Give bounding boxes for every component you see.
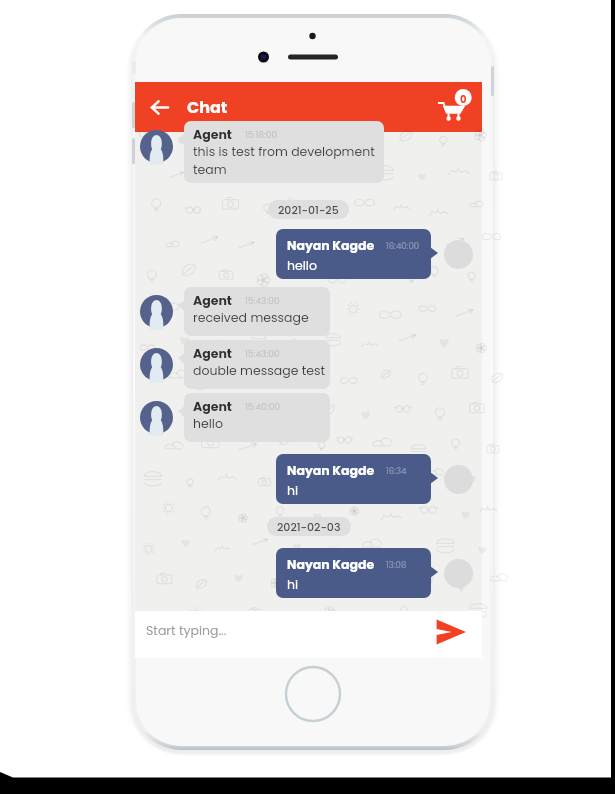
button[interactable]: Back <box>144 92 174 122</box>
staticText: 15:43:00 <box>245 348 280 361</box>
staticText: hello <box>193 415 223 432</box>
staticText: 2021-02-03 <box>277 519 341 534</box>
staticText: 13:08 <box>386 559 407 571</box>
staticText: hi <box>287 482 299 499</box>
button[interactable]: Agent <box>184 287 330 336</box>
staticText: 15:40:00 <box>245 401 280 414</box>
staticText: Agent <box>193 345 232 362</box>
staticText: hello <box>287 257 317 274</box>
staticText: this is test from development <box>193 143 375 160</box>
staticText: double message test <box>193 362 326 379</box>
button[interactable]: Agent <box>184 121 384 183</box>
staticText: Nayan Kagde <box>287 556 375 573</box>
staticText: Start typing... <box>146 622 227 639</box>
staticText: Nayan Kagde <box>287 462 375 479</box>
staticText: 2021-01-25 <box>278 202 339 217</box>
button[interactable]: Agent <box>184 340 330 389</box>
button[interactable]: Send <box>432 613 470 651</box>
staticText: hi <box>287 576 299 593</box>
staticText: 16:40:00 <box>386 240 420 252</box>
staticText: received message <box>193 309 309 326</box>
staticText: 0 <box>460 92 467 106</box>
staticText: 16:34 <box>386 465 407 477</box>
button[interactable]: Nayan Kagde <box>276 229 431 279</box>
button[interactable]: Agent <box>184 393 330 442</box>
staticText: 15:18:00 <box>245 129 278 142</box>
button[interactable]: Cart <box>436 90 470 124</box>
staticText: Nayan Kagde <box>287 237 375 254</box>
staticText: 15:43:00 <box>245 295 280 308</box>
staticText: Agent <box>193 398 232 415</box>
button[interactable]: Nayan Kagde <box>276 548 431 598</box>
staticText: Agent <box>193 292 232 309</box>
staticText: Agent <box>193 126 232 143</box>
button[interactable]: Nayan Kagde <box>276 454 431 504</box>
staticText: Chat <box>187 96 228 118</box>
staticText: team <box>193 161 227 178</box>
